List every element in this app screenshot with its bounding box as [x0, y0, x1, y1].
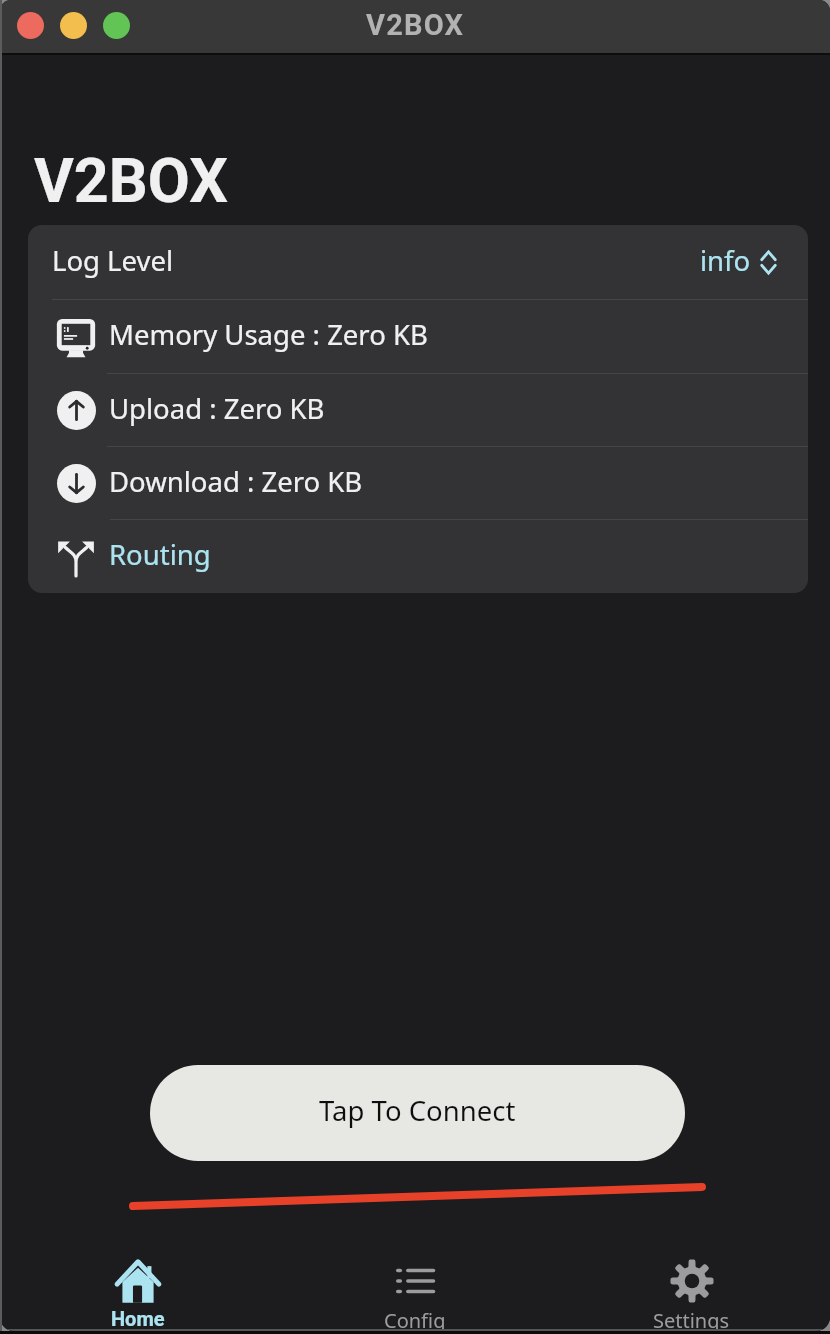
- staticText: Tap To Connect: [319, 1092, 516, 1129]
- button[interactable]: Config: [276, 1238, 553, 1331]
- button[interactable]: Home: [0, 1238, 276, 1331]
- button[interactable]: Minimize window: [60, 12, 87, 39]
- staticText: Log Level: [52, 242, 174, 279]
- staticText: Config: [384, 1307, 446, 1331]
- staticText: V2BOX: [366, 8, 465, 42]
- button[interactable]: Routing: [28, 520, 808, 593]
- staticText: Upload : Zero KB: [109, 390, 325, 427]
- staticText: Settings: [653, 1307, 730, 1331]
- staticText: Routing: [109, 536, 211, 573]
- staticText: info: [700, 242, 751, 279]
- button[interactable]: Upload : Zero KB: [28, 374, 808, 446]
- button[interactable]: Close window: [17, 12, 44, 39]
- button[interactable]: Log Level: [28, 225, 808, 299]
- staticText: V2BOX: [34, 145, 228, 216]
- staticText: Home: [111, 1307, 165, 1330]
- staticText: Download : Zero KB: [109, 463, 363, 500]
- button[interactable]: Memory Usage : Zero KB: [28, 300, 808, 373]
- button[interactable]: Maximize window: [103, 12, 130, 39]
- button[interactable]: Settings: [553, 1238, 830, 1331]
- staticText: Memory Usage : Zero KB: [109, 316, 428, 353]
- button[interactable]: Download : Zero KB: [28, 447, 808, 519]
- button[interactable]: Tap To Connect: [150, 1065, 685, 1161]
